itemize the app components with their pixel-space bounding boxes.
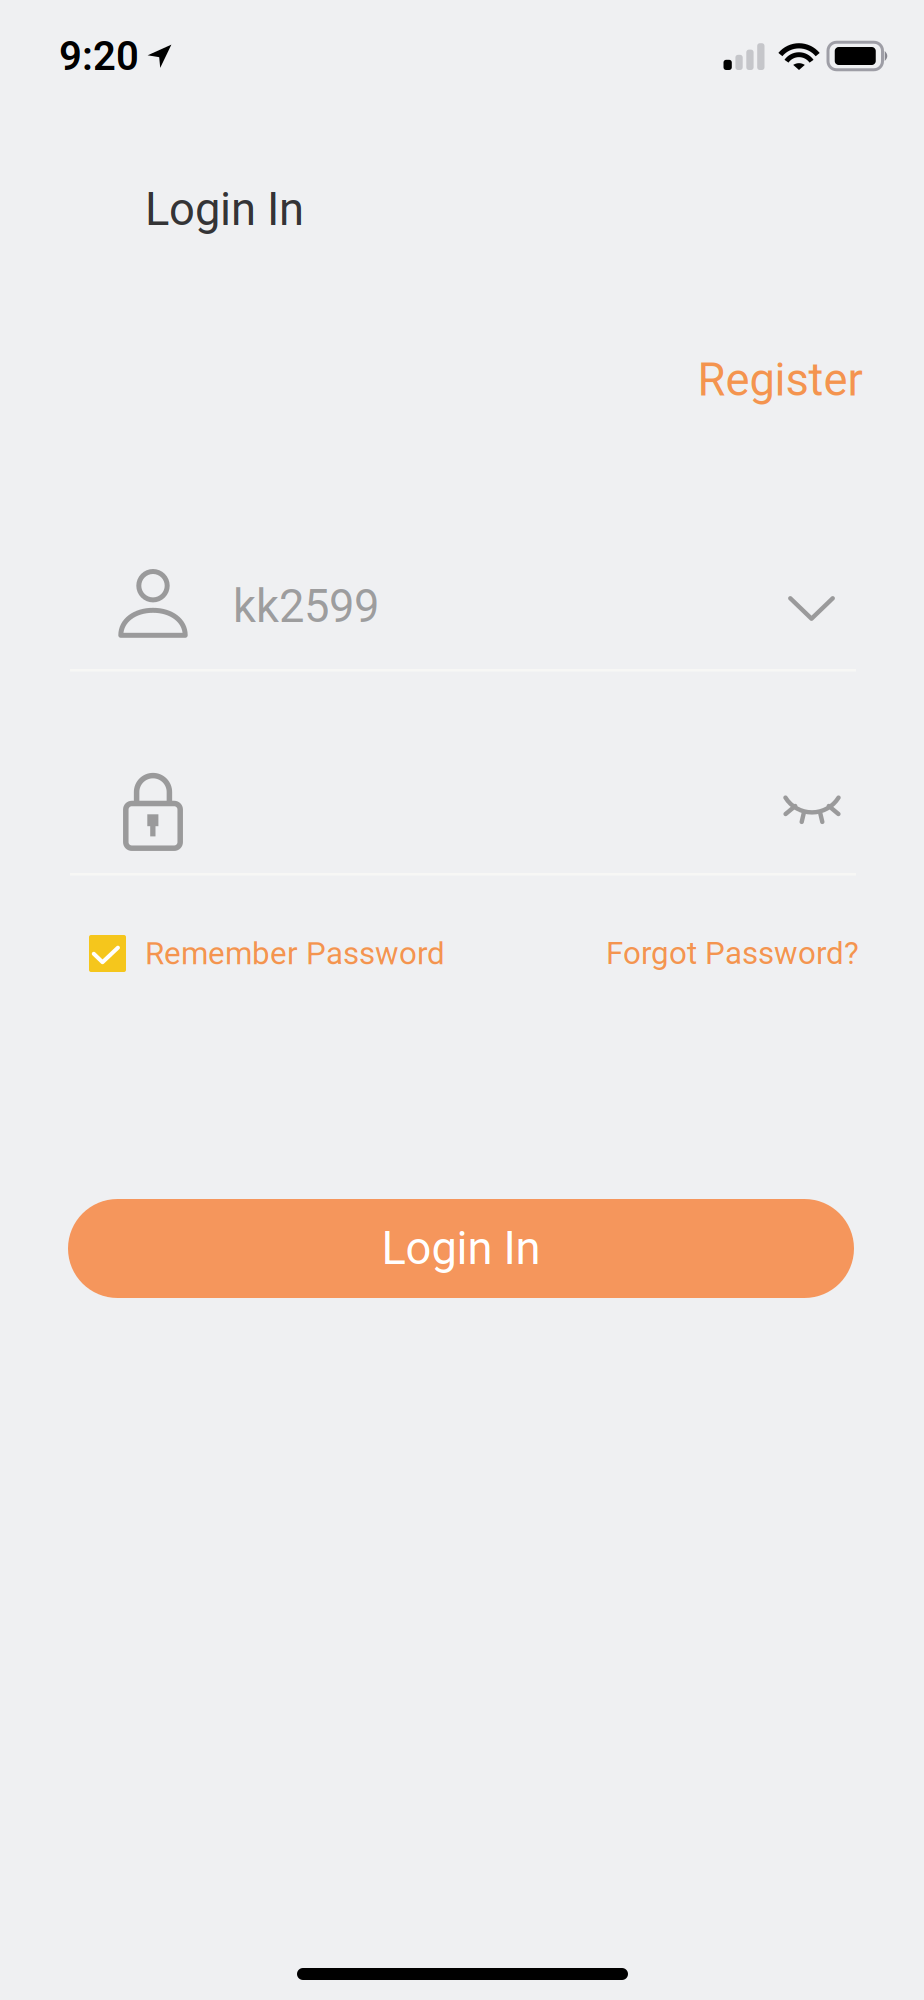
staticText: kk2599 (233, 580, 379, 633)
button[interactable]: Show password (761, 774, 863, 846)
staticText: Forgot Password? (606, 935, 859, 972)
staticText: Register (697, 353, 862, 406)
staticText: Remember Password (145, 935, 445, 972)
staticText: Login In (381, 1222, 540, 1275)
staticText: Login In (145, 183, 304, 236)
staticText: 9:20 (59, 33, 139, 80)
button[interactable]: Login In (68, 1199, 854, 1298)
button[interactable]: Register (684, 341, 876, 419)
button[interactable]: Forgot Password? (585, 919, 880, 988)
button[interactable]: Remember Password (68, 919, 466, 988)
button[interactable]: Choose account (766, 574, 857, 643)
